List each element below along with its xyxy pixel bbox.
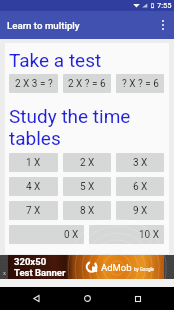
staticText: 0 X bbox=[64, 229, 79, 241]
staticText: ? X ? = 6 bbox=[122, 78, 159, 90]
button[interactable]: 0 X bbox=[9, 225, 84, 244]
staticText: Take a test bbox=[9, 49, 102, 71]
staticText: AdMob bbox=[101, 262, 132, 273]
staticText: 7 X bbox=[26, 205, 41, 217]
button[interactable]: Advertisement bbox=[8, 255, 164, 279]
button[interactable]: 4 X bbox=[9, 177, 58, 196]
button[interactable]: 2 X 3 = ? bbox=[9, 74, 58, 93]
staticText: 8 X bbox=[80, 205, 95, 217]
staticText: 3 X bbox=[133, 157, 148, 169]
button[interactable]: 2 X ? = 6 bbox=[63, 74, 111, 93]
staticText: 7:55 bbox=[157, 1, 172, 10]
button[interactable]: 10 X bbox=[89, 225, 164, 244]
button[interactable]: Back bbox=[21, 287, 51, 310]
button[interactable]: 7 X bbox=[9, 201, 58, 220]
staticText: by Google bbox=[134, 267, 154, 272]
button[interactable]: Home bbox=[72, 287, 102, 310]
button[interactable]: More options bbox=[152, 11, 174, 39]
button[interactable]: 8 X bbox=[63, 201, 111, 220]
button[interactable]: 3 X bbox=[116, 153, 164, 172]
staticText: Study the time tables bbox=[9, 105, 164, 149]
button[interactable]: 6 X bbox=[116, 177, 164, 196]
staticText: 2 X bbox=[80, 157, 95, 169]
staticText: 5 X bbox=[80, 181, 95, 193]
staticText: 2 X ? = 6 bbox=[68, 78, 106, 90]
staticText: Test Banner bbox=[14, 267, 66, 278]
staticText: 9 X bbox=[133, 205, 148, 217]
staticText: 10 X bbox=[139, 229, 159, 241]
button[interactable]: 1 X bbox=[9, 153, 58, 172]
staticText: 320x50 bbox=[14, 256, 47, 267]
staticText: 1 X bbox=[26, 157, 41, 169]
staticText: 4 X bbox=[26, 181, 41, 193]
staticText: 2 X 3 = ? bbox=[15, 78, 53, 90]
button[interactable]: 9 X bbox=[116, 201, 164, 220]
staticText: Learn to multiply bbox=[7, 20, 80, 31]
button[interactable]: 5 X bbox=[63, 177, 111, 196]
staticText: 6 X bbox=[133, 181, 148, 193]
button[interactable]: Recent apps bbox=[123, 287, 153, 310]
staticText: x bbox=[3, 269, 6, 276]
button[interactable]: ? X ? = 6 bbox=[116, 74, 164, 93]
button[interactable]: 2 X bbox=[63, 153, 111, 172]
button[interactable]: Close ad bbox=[0, 255, 8, 279]
